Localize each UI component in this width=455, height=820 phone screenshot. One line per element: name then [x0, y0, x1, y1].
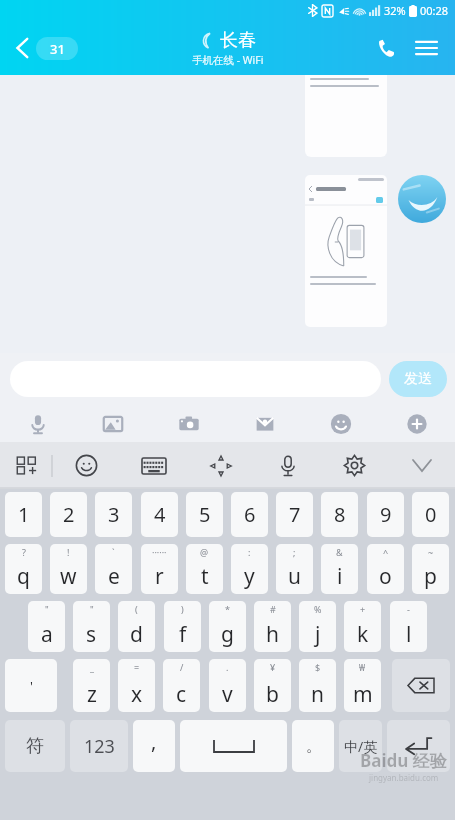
- button[interactable]: Space: [180, 720, 287, 772]
- staticText: q: [17, 562, 30, 591]
- staticText: l: [406, 620, 412, 649]
- button[interactable]: 发送: [389, 361, 447, 397]
- staticText: d: [130, 620, 143, 649]
- staticText: _: [90, 661, 94, 673]
- button[interactable]: ^: [367, 544, 404, 594]
- staticText: ······: [152, 546, 167, 558]
- button[interactable]: #: [254, 601, 291, 652]
- button[interactable]: @: [186, 544, 223, 594]
- button[interactable]: Symbols: [5, 720, 65, 772]
- button[interactable]: ;: [276, 544, 313, 594]
- button[interactable]: 2: [50, 492, 87, 537]
- button[interactable]: 0: [412, 492, 449, 537]
- button[interactable]: ~: [412, 544, 449, 594]
- button[interactable]: Voice input: [254, 442, 321, 489]
- staticText: 4: [154, 501, 166, 528]
- button[interactable]: :: [231, 544, 268, 594]
- button[interactable]: Comma: [133, 720, 175, 772]
- button[interactable]: Avatar: [398, 175, 446, 223]
- button[interactable]: Enter: [387, 720, 450, 772]
- staticText: w: [60, 562, 77, 591]
- staticText: %: [314, 603, 322, 615]
- staticText: Baidu 经验: [360, 749, 447, 772]
- button[interactable]: `: [95, 544, 132, 594]
- button[interactable]: .: [209, 659, 246, 712]
- staticText: h: [266, 620, 279, 649]
- staticText: ": [45, 603, 49, 615]
- button[interactable]: *: [209, 601, 246, 652]
- staticText: x: [131, 680, 143, 709]
- button[interactable]: &: [321, 544, 358, 594]
- button[interactable]: Backspace: [392, 659, 450, 712]
- button[interactable]: ¥: [254, 659, 291, 712]
- staticText: (: [135, 603, 138, 615]
- staticText: 。: [306, 737, 321, 756]
- button[interactable]: 7: [276, 492, 313, 537]
- button[interactable]: -: [390, 601, 427, 652]
- staticText: &: [336, 546, 343, 558]
- button[interactable]: 8: [321, 492, 358, 537]
- staticText: .: [226, 661, 229, 673]
- button[interactable]: Settings: [321, 442, 388, 489]
- button[interactable]: !: [50, 544, 87, 594]
- button[interactable]: [305, 75, 387, 157]
- button[interactable]: +: [344, 601, 381, 652]
- staticText: 9: [380, 501, 392, 528]
- button[interactable]: _: [73, 659, 110, 712]
- button[interactable]: 9: [367, 492, 404, 537]
- button[interactable]: Emoji: [53, 442, 120, 489]
- button[interactable]: Sticker: [227, 405, 303, 442]
- button[interactable]: 5: [186, 492, 223, 537]
- button[interactable]: Add shortcut: [0, 442, 52, 489]
- button[interactable]: ': [5, 659, 57, 712]
- button[interactable]: 1: [5, 492, 42, 537]
- staticText: r: [155, 562, 164, 591]
- button[interactable]: Gallery: [75, 405, 151, 442]
- button[interactable]: ₩: [344, 659, 381, 712]
- button[interactable]: Collapse: [388, 442, 455, 489]
- button[interactable]: 4: [141, 492, 178, 537]
- button[interactable]: 3: [95, 492, 132, 537]
- button[interactable]: Camera: [151, 405, 227, 442]
- button[interactable]: Language switch: [339, 720, 382, 772]
- staticText: s: [86, 620, 97, 649]
- staticText: 31: [50, 40, 65, 58]
- button[interactable]: More: [379, 405, 455, 442]
- button[interactable]: ): [164, 601, 201, 652]
- button[interactable]: Arrow keys: [187, 442, 254, 489]
- button[interactable]: Call: [369, 31, 403, 65]
- staticText: $: [315, 661, 321, 673]
- staticText: ): [181, 603, 184, 615]
- staticText: p: [424, 562, 437, 591]
- button[interactable]: ······: [141, 544, 178, 594]
- staticText: 00:28: [420, 3, 449, 18]
- button[interactable]: =: [118, 659, 155, 712]
- button[interactable]: (: [118, 601, 155, 652]
- button[interactable]: [305, 175, 387, 327]
- button[interactable]: /: [163, 659, 200, 712]
- button[interactable]: ": [73, 601, 110, 652]
- staticText: ~: [428, 546, 434, 558]
- staticText: c: [176, 680, 187, 709]
- staticText: ₩: [359, 661, 366, 673]
- staticText: o: [379, 562, 392, 591]
- button[interactable]: Period: [292, 720, 334, 772]
- staticText: 3: [108, 501, 120, 528]
- button[interactable]: Back, 31 unread: [10, 32, 82, 64]
- button[interactable]: Keyboard layout: [120, 442, 187, 489]
- button[interactable]: Numbers: [70, 720, 128, 772]
- button[interactable]: 6: [231, 492, 268, 537]
- button[interactable]: Voice: [0, 405, 75, 442]
- button[interactable]: ?: [5, 544, 42, 594]
- staticText: t: [201, 562, 209, 591]
- button[interactable]: Emoji: [303, 405, 379, 442]
- button[interactable]: Menu: [409, 31, 443, 65]
- staticText: 8: [334, 501, 346, 528]
- staticText: e: [108, 562, 120, 591]
- button[interactable]: %: [299, 601, 336, 652]
- staticText: 2: [63, 501, 75, 528]
- button[interactable]: ": [28, 601, 65, 652]
- button[interactable]: $: [299, 659, 336, 712]
- staticText: m: [353, 680, 373, 709]
